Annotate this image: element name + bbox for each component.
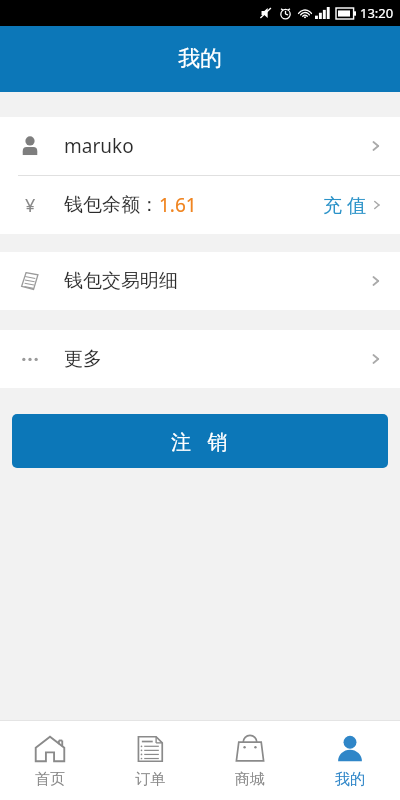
staticText: 钱包余额： <box>64 193 159 217</box>
staticText: maruko <box>64 133 134 159</box>
staticText: 更多 <box>64 347 102 371</box>
staticText: 钱包交易明细 <box>64 269 178 293</box>
staticText: 我的 <box>335 770 365 789</box>
button[interactable]: 注 销 <box>12 414 388 468</box>
button[interactable]: maruko <box>0 117 400 176</box>
staticText: 我的 <box>178 45 222 73</box>
staticText: 充 值 <box>323 192 366 218</box>
staticText: 13:20 <box>360 4 394 22</box>
staticText: 订单 <box>135 770 165 789</box>
button[interactable]: 我的 <box>300 721 400 800</box>
staticText: 1.61 <box>159 192 197 218</box>
button[interactable]: 钱包交易明细 <box>0 252 400 310</box>
staticText: 注 销 <box>171 428 230 455</box>
button[interactable]: 商城 <box>200 721 300 800</box>
button[interactable]: 订单 <box>100 721 200 800</box>
button[interactable]: ¥ <box>0 176 400 234</box>
staticText: 商城 <box>235 770 265 789</box>
button[interactable]: 更多 <box>0 330 400 388</box>
button[interactable]: 首页 <box>0 721 100 800</box>
staticText: ¥ <box>25 193 36 217</box>
staticText: 首页 <box>35 770 65 789</box>
